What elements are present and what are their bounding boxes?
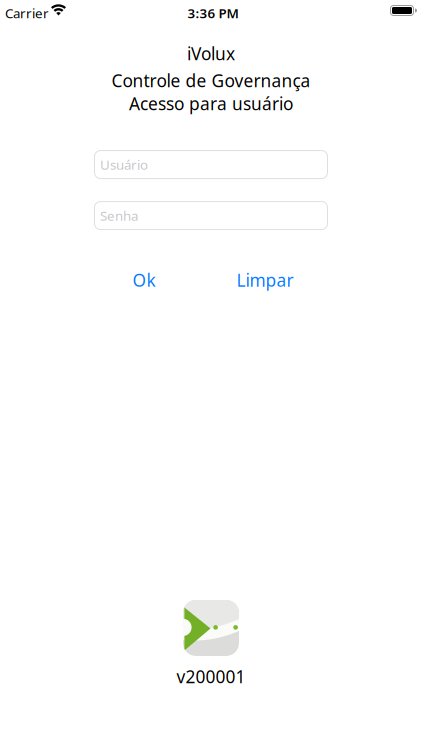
staticText: Carrier (5, 4, 49, 22)
button[interactable]: Ok (90, 267, 198, 293)
staticText: Ok (132, 268, 155, 291)
staticText: Limpar (236, 268, 293, 291)
staticText: Controle de Governança (111, 69, 310, 92)
staticText: Senha (100, 207, 138, 224)
staticText: Usuário (100, 156, 148, 173)
staticText: v200001 (176, 665, 245, 688)
staticText: Acesso para usuário (129, 92, 293, 115)
staticText: 3:36 PM (187, 4, 238, 22)
staticText: iVolux (187, 42, 235, 65)
button[interactable]: Limpar (198, 267, 332, 293)
